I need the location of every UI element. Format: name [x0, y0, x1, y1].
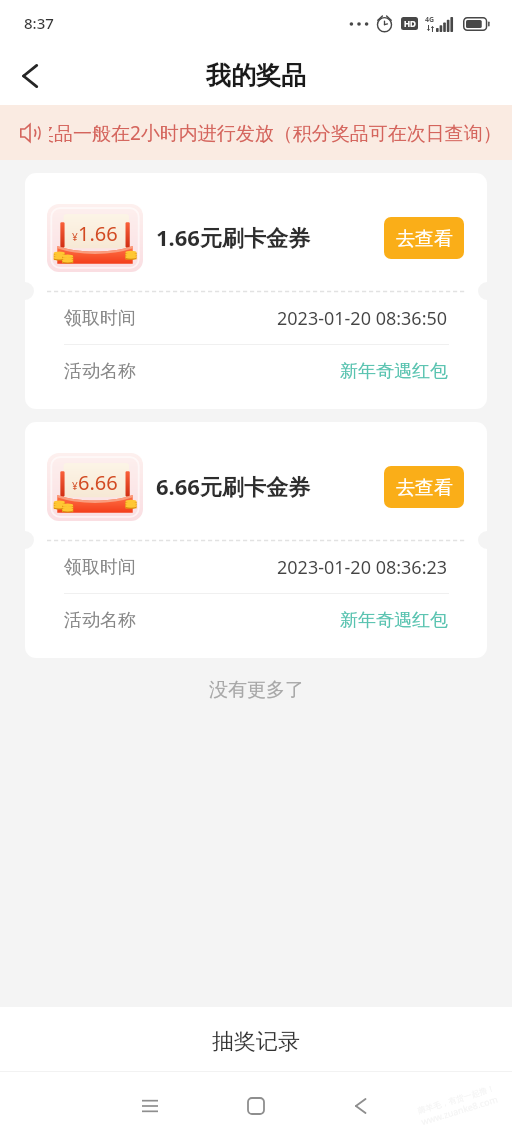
button[interactable]: 抽奖记录 — [0, 1007, 512, 1072]
staticText: 6.66元刷卡金券 — [156, 471, 310, 501]
staticText: 活动名称 — [64, 609, 136, 632]
button[interactable]: Menu — [125, 1081, 175, 1131]
button[interactable]: Back — [337, 1081, 387, 1131]
staticText: 奖品一般在2小时内进行发放（积分奖品可在次日查询） — [49, 120, 495, 146]
staticText: 2023-01-20 08:36:50 — [277, 306, 448, 331]
staticText: 去查看 — [396, 227, 453, 251]
staticText: ¥ — [72, 230, 78, 244]
staticText: 8:37 — [24, 13, 54, 33]
staticText: 新年奇遇红包 — [340, 609, 448, 632]
button[interactable]: 去查看 — [384, 217, 464, 259]
button[interactable]: Home — [231, 1081, 281, 1131]
staticText: 领取时间 — [64, 556, 136, 579]
staticText: 新年奇遇红包 — [340, 360, 448, 383]
staticText: 抽奖记录 — [212, 1028, 300, 1056]
staticText: ¥ — [72, 479, 78, 493]
staticText: 4G — [425, 15, 435, 25]
staticText: 我的奖品 — [206, 60, 306, 91]
button[interactable]: 去查看 — [384, 466, 464, 508]
staticText: 去查看 — [396, 476, 453, 500]
staticText: 1.66 — [78, 220, 118, 247]
staticText: 活动名称 — [64, 360, 136, 383]
staticText: 1.66元刷卡金券 — [156, 222, 310, 252]
staticText: 6.66 — [78, 469, 118, 496]
staticText: HD — [404, 18, 416, 29]
staticText: 2023-01-20 08:36:23 — [277, 555, 448, 580]
staticText: 领取时间 — [64, 307, 136, 330]
button[interactable]: Back — [0, 46, 56, 105]
staticText: 没有更多了 — [209, 678, 304, 702]
